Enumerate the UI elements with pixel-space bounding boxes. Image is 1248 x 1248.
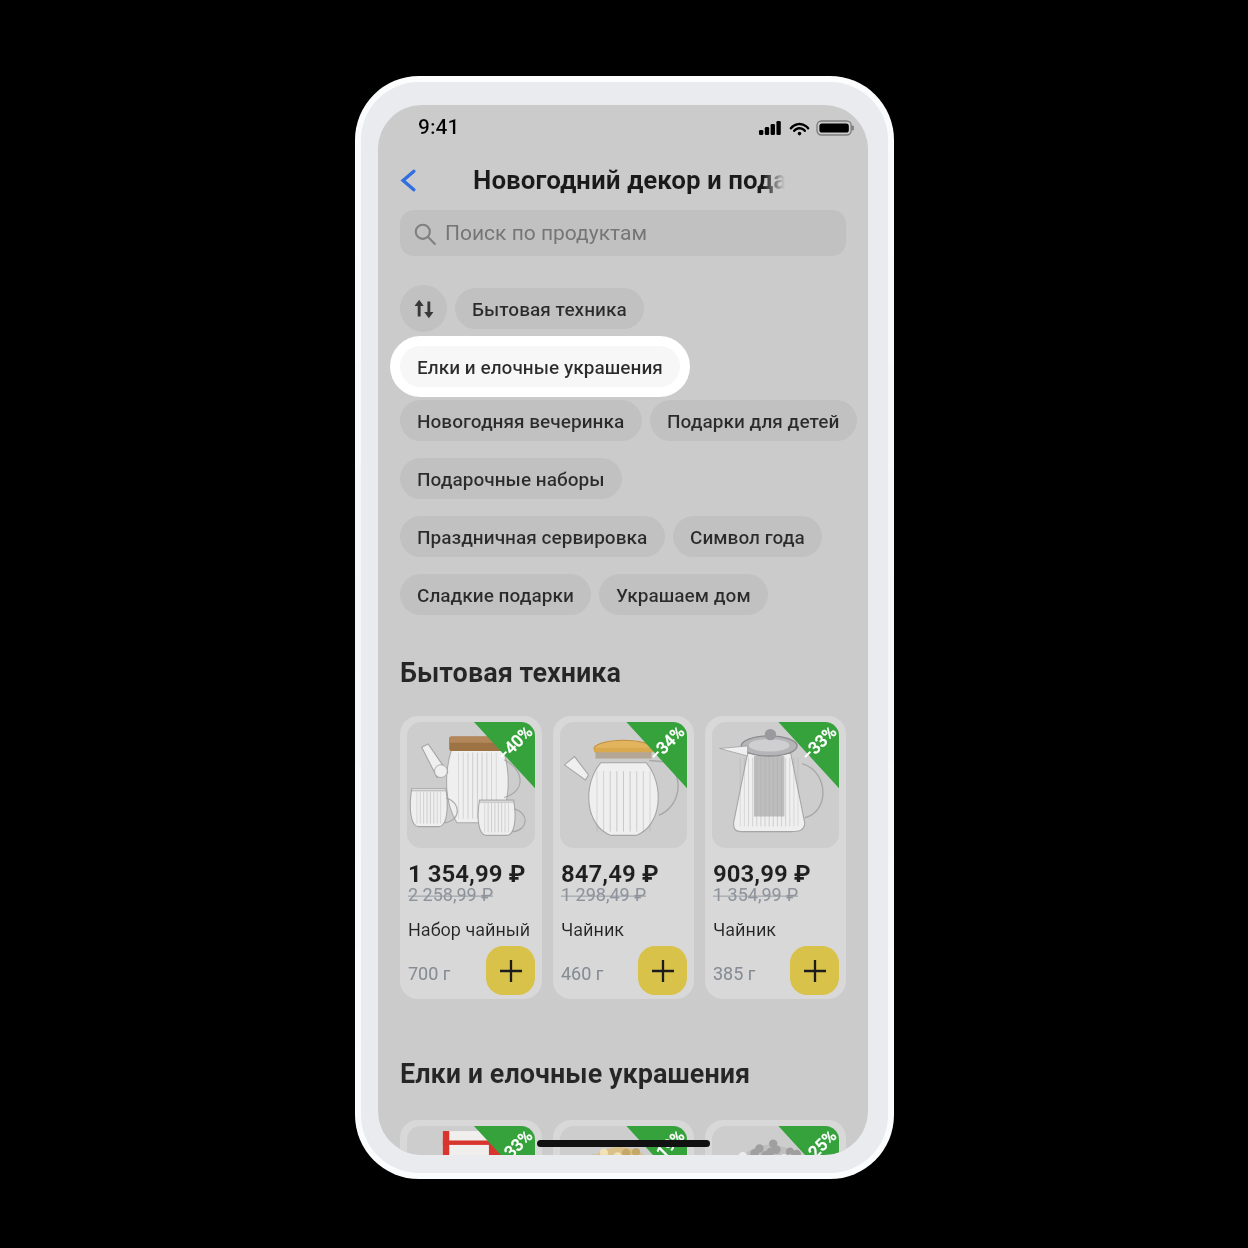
staticText: Поиск по продуктам	[445, 221, 647, 246]
button[interactable]: −19%	[553, 1120, 694, 1155]
button[interactable]: Add to cart	[638, 946, 687, 995]
staticText: −34%	[645, 722, 687, 765]
staticText: −19%	[645, 1126, 687, 1155]
staticText: 903,99 ₽	[713, 860, 811, 888]
staticText: Чайник	[713, 919, 776, 940]
button[interactable]: −33%	[400, 1120, 542, 1155]
staticText: Елки и елочные украшения	[400, 1058, 751, 1090]
staticText: −40%	[493, 722, 535, 765]
button[interactable]: −33%	[705, 716, 846, 999]
button[interactable]: −25%	[705, 1120, 846, 1155]
staticText: Символ года	[690, 526, 805, 548]
staticText: Новогодняя вечеринка	[417, 410, 625, 432]
staticText: 847,49 ₽	[561, 860, 659, 888]
button[interactable]: Новогодняя вечеринка	[400, 400, 642, 441]
staticText: 1 354,99 ₽	[408, 860, 526, 888]
button[interactable]: Back	[386, 158, 430, 202]
staticText: 700 г	[408, 963, 451, 984]
staticText: Бытовая техника	[400, 657, 622, 689]
staticText: 9:41	[418, 115, 460, 140]
staticText: Сладкие подарки	[417, 584, 574, 606]
button[interactable]: Поиск по продуктам	[400, 210, 846, 256]
staticText: Подарки для детей	[667, 410, 840, 432]
staticText: 2 258,99 ₽	[408, 884, 494, 905]
button[interactable]: −40%	[400, 716, 542, 999]
staticText: Набор чайный	[408, 919, 531, 940]
button[interactable]: Украшаем дом	[599, 574, 768, 615]
button[interactable]: Символ года	[673, 516, 822, 557]
button[interactable]: Подарки для детей	[650, 400, 857, 441]
staticText: Новогодний декор и подарки	[473, 165, 785, 195]
staticText: −33%	[797, 722, 839, 765]
button[interactable]: Подарочные наборы	[400, 458, 622, 499]
button[interactable]: Add to cart	[790, 946, 839, 995]
staticText: −33%	[493, 1126, 535, 1155]
staticText: 1 298,49 ₽	[561, 884, 647, 905]
staticText: 460 г	[561, 963, 604, 984]
button[interactable]: Елки и елочные украшения	[400, 346, 680, 387]
staticText: 385 г	[713, 963, 756, 984]
button[interactable]: Sort	[400, 285, 447, 332]
button[interactable]: Сладкие подарки	[400, 574, 591, 615]
button[interactable]: Праздничная сервировка	[400, 516, 665, 557]
button[interactable]: Add to cart	[486, 946, 535, 995]
staticText: Украшаем дом	[616, 584, 751, 606]
staticText: −25%	[797, 1126, 839, 1155]
staticText: 1 354,99 ₽	[713, 884, 799, 905]
staticText: Чайник	[561, 919, 624, 940]
staticText: Праздничная сервировка	[417, 526, 648, 548]
button[interactable]: −34%	[553, 716, 694, 999]
button[interactable]: Бытовая техника	[455, 288, 644, 329]
staticText: Бытовая техника	[472, 298, 627, 320]
staticText: Елки и елочные украшения	[417, 356, 663, 378]
staticText: Подарочные наборы	[417, 468, 605, 490]
